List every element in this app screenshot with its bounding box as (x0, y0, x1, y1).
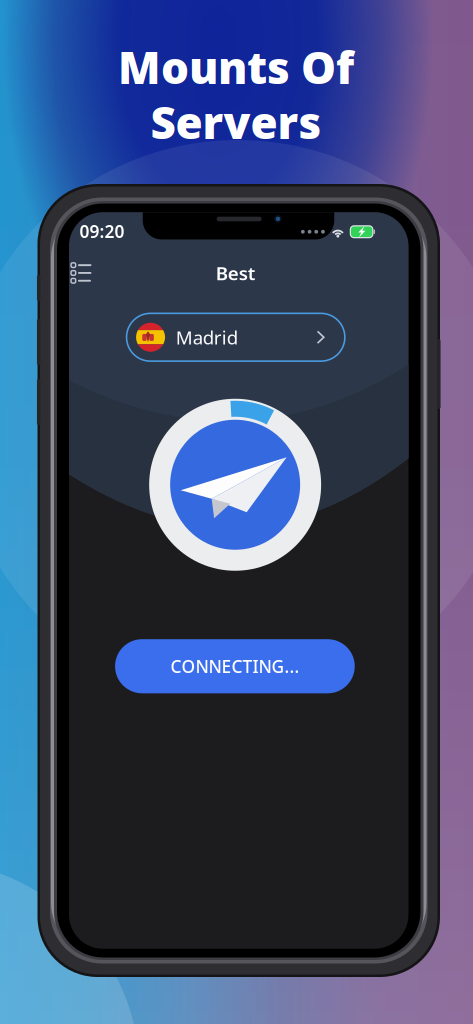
staticText: 09:20 (79, 220, 124, 243)
staticText: Mounts Of (118, 38, 354, 96)
staticText: CONNECTING... (170, 655, 299, 678)
staticText: Madrid (176, 325, 238, 350)
staticText: Servers (150, 93, 321, 151)
button[interactable]: Madrid (127, 313, 345, 361)
staticText: Best (216, 261, 256, 285)
button[interactable]: Servers list (62, 255, 100, 291)
button[interactable]: CONNECTING... (115, 639, 355, 693)
